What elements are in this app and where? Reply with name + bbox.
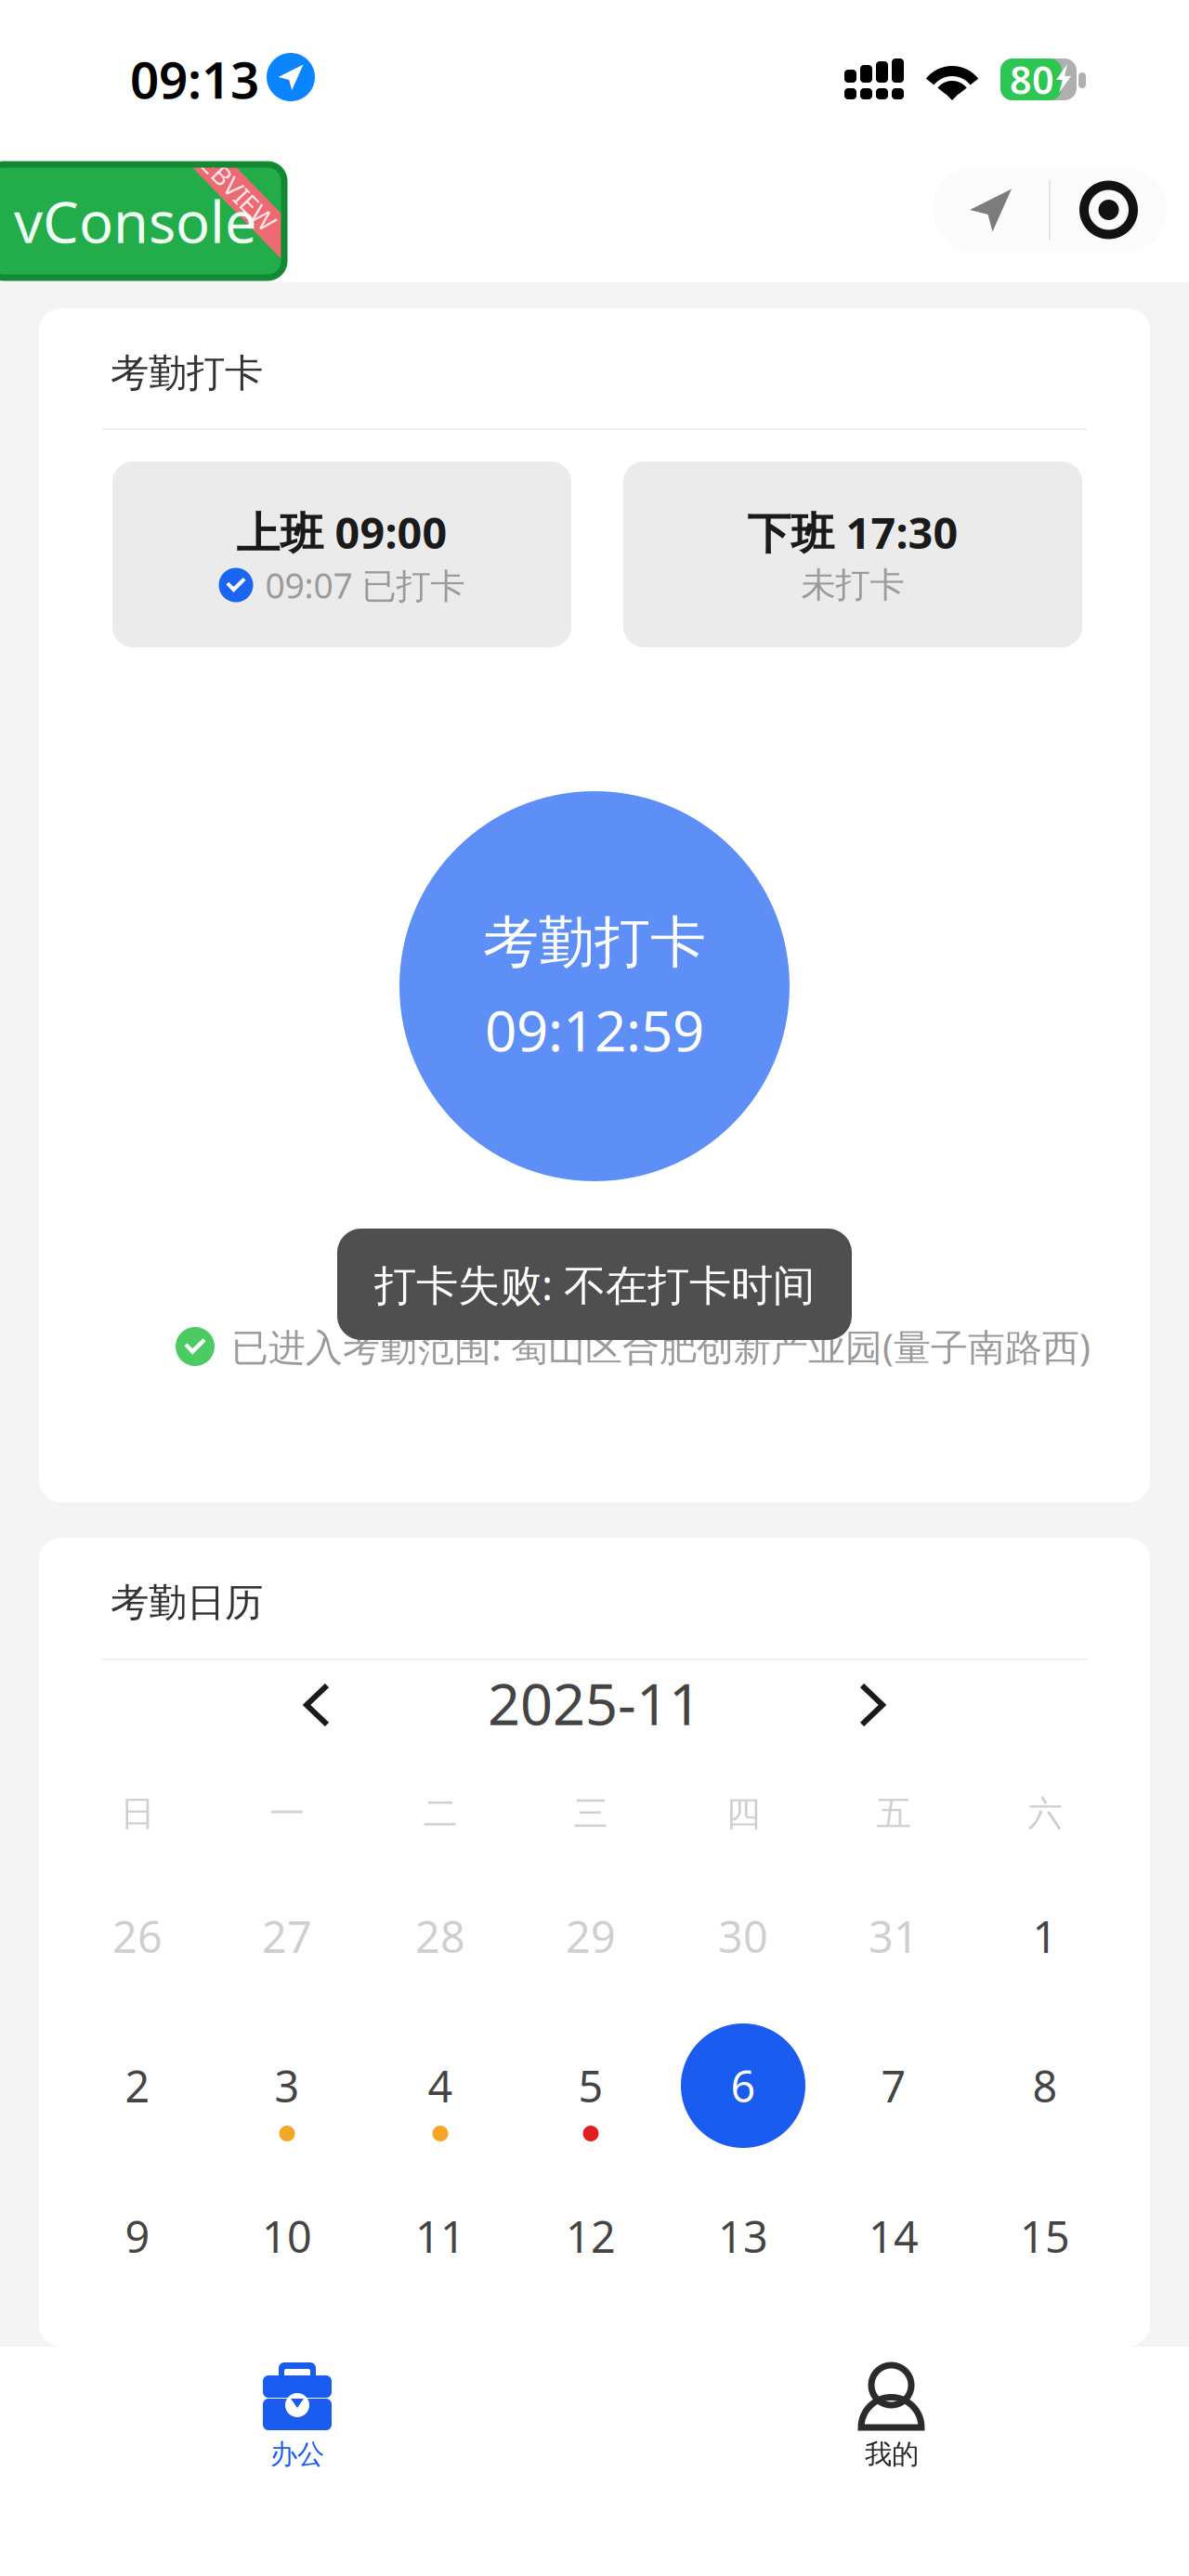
button[interactable]: 9 xyxy=(68,2185,207,2335)
staticText: 27 xyxy=(262,1907,312,1965)
button[interactable]: 30 xyxy=(673,1885,813,2036)
button[interactable]: 26 xyxy=(68,1885,207,2036)
staticText: 30 xyxy=(718,1907,768,1965)
staticText: 打卡失败: 不在打卡时间 xyxy=(374,1256,815,1312)
button[interactable]: Locate me xyxy=(933,167,1049,253)
button[interactable]: 13 xyxy=(673,2185,813,2335)
staticText: 已进入考勤范围: 蜀山区合肥创新产业园(量子南路西) xyxy=(231,1322,1091,1371)
button[interactable]: 31 xyxy=(824,1885,963,2036)
staticText: 09:13 xyxy=(130,45,259,113)
button[interactable]: 下班 17:30 xyxy=(623,462,1082,647)
staticText: 80 xyxy=(1010,54,1054,105)
staticText: 考勤打卡 xyxy=(111,350,263,397)
button[interactable]: 15 xyxy=(975,2185,1115,2335)
button[interactable]: 4 xyxy=(371,2035,510,2185)
staticText: 13 xyxy=(718,2207,768,2265)
button[interactable]: 考勤打卡 xyxy=(399,791,790,1181)
staticText: 3 xyxy=(274,2057,300,2114)
staticText: 二 xyxy=(423,1792,457,1835)
staticText: 12 xyxy=(566,2207,616,2265)
staticText: 7 xyxy=(881,2057,906,2114)
button[interactable]: 6 xyxy=(673,2035,813,2185)
staticText: 未打卡 xyxy=(801,564,904,606)
staticText: 2025-11 xyxy=(488,1665,701,1741)
staticText: 三 xyxy=(574,1792,608,1835)
button[interactable]: 7 xyxy=(824,2035,963,2185)
button[interactable]: 10 xyxy=(217,2185,357,2335)
staticText: 5 xyxy=(578,2057,603,2114)
button[interactable]: 3 xyxy=(217,2035,357,2185)
staticText: 4 xyxy=(428,2057,453,2114)
staticText: 下班 17:30 xyxy=(747,503,958,561)
staticText: 2 xyxy=(125,2057,150,2114)
staticText: 考勤日历 xyxy=(111,1579,263,1626)
staticText: 31 xyxy=(869,1907,919,1965)
staticText: 我的 xyxy=(865,2438,919,2471)
staticText: 26 xyxy=(112,1907,163,1965)
button[interactable]: 12 xyxy=(521,2185,660,2335)
staticText: 六 xyxy=(1028,1792,1062,1835)
button[interactable]: 5 xyxy=(521,2035,660,2185)
button[interactable]: Previous month xyxy=(270,1659,363,1751)
button[interactable]: Next month xyxy=(826,1659,919,1751)
staticText: 09:07 已打卡 xyxy=(265,562,465,608)
staticText: 一 xyxy=(270,1792,304,1835)
staticText: 09:12:59 xyxy=(485,993,704,1067)
button[interactable]: 办公 xyxy=(158,2347,437,2486)
button[interactable]: 28 xyxy=(371,1885,510,2036)
button[interactable]: 8 xyxy=(975,2035,1115,2185)
button[interactable]: 1 xyxy=(975,1885,1115,2036)
staticText: 15 xyxy=(1020,2207,1070,2265)
staticText: 五 xyxy=(876,1792,911,1835)
button[interactable]: 上班 09:00 xyxy=(112,462,571,647)
staticText: 29 xyxy=(566,1907,616,1965)
staticText: 11 xyxy=(415,2207,465,2265)
staticText: WEBVIEW xyxy=(171,167,290,201)
button[interactable]: 我的 xyxy=(752,2347,1031,2486)
staticText: 办公 xyxy=(270,2438,324,2471)
staticText: 9 xyxy=(125,2207,150,2265)
button[interactable]: WEBVIEW xyxy=(0,164,284,278)
button[interactable]: 27 xyxy=(217,1885,357,2036)
staticText: 四 xyxy=(726,1792,760,1835)
staticText: 6 xyxy=(731,2057,756,2114)
staticText: 28 xyxy=(415,1907,465,1965)
staticText: 日 xyxy=(120,1792,155,1835)
button[interactable]: 14 xyxy=(824,2185,963,2335)
staticText: 1 xyxy=(1032,1907,1058,1965)
button[interactable]: 2 xyxy=(68,2035,207,2185)
staticText: 上班 09:00 xyxy=(236,503,447,561)
button[interactable]: 29 xyxy=(521,1885,660,2036)
staticText: 14 xyxy=(869,2207,919,2265)
button[interactable]: Center map xyxy=(1051,167,1167,253)
staticText: 考勤打卡 xyxy=(483,908,706,977)
button[interactable]: 11 xyxy=(371,2185,510,2335)
staticText: vConsole xyxy=(14,183,257,259)
staticText: 8 xyxy=(1032,2057,1058,2114)
staticText: 10 xyxy=(262,2207,312,2265)
